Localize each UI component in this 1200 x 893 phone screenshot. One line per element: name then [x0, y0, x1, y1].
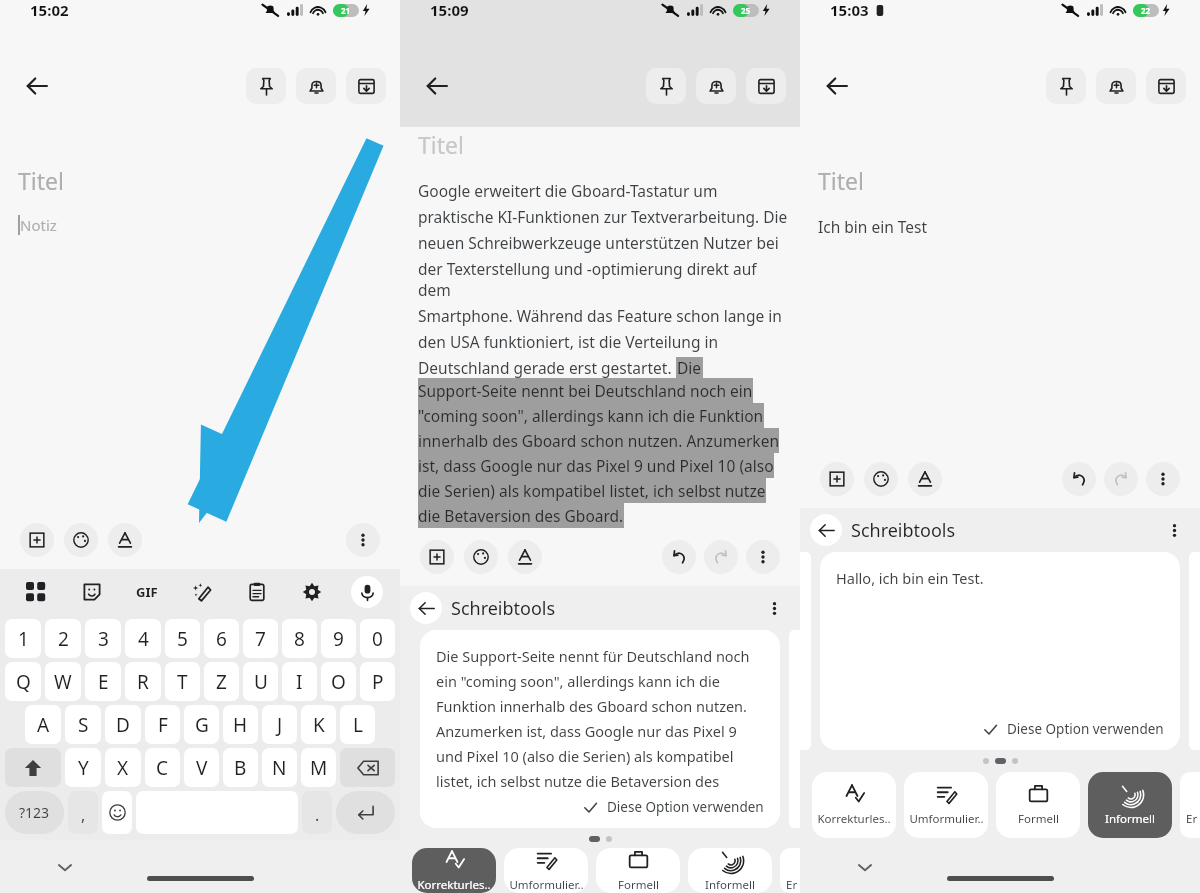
- button[interactable]: H: [223, 705, 258, 744]
- button[interactable]: Diese Option verwenden: [983, 720, 1164, 738]
- button[interactable]: Redo: [1104, 462, 1138, 496]
- button[interactable]: Back: [14, 63, 60, 109]
- button[interactable]: Back: [414, 63, 460, 109]
- button[interactable]: Clipboard: [229, 569, 284, 614]
- button[interactable]: Writing tools: [174, 569, 229, 614]
- staticText: 15:09: [430, 0, 469, 20]
- button[interactable]: Reminder: [1096, 68, 1136, 104]
- button[interactable]: Redo: [704, 540, 738, 574]
- button[interactable]: Hallo, ich bin ein Test.: [820, 552, 1180, 750]
- button[interactable]: Korrekturles..: [812, 772, 896, 838]
- button[interactable]: Palette: [464, 540, 498, 574]
- button[interactable]: Diese Option verwenden: [583, 798, 764, 816]
- button[interactable]: More options: [760, 594, 788, 622]
- button[interactable]: Add: [820, 462, 854, 496]
- button[interactable]: GIF: [119, 569, 174, 614]
- button[interactable]: Undo: [662, 540, 696, 574]
- button[interactable]: Umformulier..: [904, 772, 988, 838]
- button[interactable]: 4: [125, 619, 161, 658]
- button[interactable]: Back: [810, 514, 842, 546]
- button[interactable]: Archive: [1146, 68, 1186, 104]
- button[interactable]: Formell: [596, 848, 680, 893]
- button[interactable]: U: [243, 662, 278, 701]
- button[interactable]: ?123: [5, 791, 64, 834]
- button[interactable]: L: [340, 705, 375, 744]
- button[interactable]: V: [184, 748, 219, 787]
- button[interactable]: D: [105, 705, 141, 744]
- button[interactable]: Die Support-Seite nennt für Deutschland …: [420, 630, 780, 828]
- button[interactable]: S: [65, 705, 101, 744]
- button[interactable]: Undo: [1062, 462, 1096, 496]
- button[interactable]: 6: [204, 619, 239, 658]
- button[interactable]: Formell: [996, 772, 1080, 838]
- button[interactable]: Archive: [346, 68, 386, 104]
- button[interactable]: Voice input: [351, 576, 383, 608]
- button[interactable]: 0: [360, 619, 395, 658]
- button[interactable]: Y: [65, 748, 101, 787]
- button[interactable]: Enter: [336, 791, 395, 834]
- button[interactable]: N: [262, 748, 297, 787]
- button[interactable]: Format: [108, 523, 142, 557]
- button[interactable]: Archive: [746, 68, 786, 104]
- button[interactable]: Pin: [1046, 68, 1086, 104]
- button[interactable]: Format: [508, 540, 542, 574]
- button[interactable]: Add: [20, 523, 54, 557]
- button[interactable]: Back: [814, 63, 860, 109]
- button[interactable]: Reminder: [296, 68, 336, 104]
- button[interactable]: Format: [908, 462, 942, 496]
- button[interactable]: Umformulier..: [504, 848, 588, 893]
- button[interactable]: More options: [346, 523, 380, 557]
- button[interactable]: Z: [204, 662, 239, 701]
- button[interactable]: Q: [5, 662, 41, 701]
- button[interactable]: K: [301, 705, 336, 744]
- button[interactable]: Er: [1180, 772, 1200, 838]
- button[interactable]: Hide keyboard: [52, 854, 78, 880]
- button[interactable]: 8: [282, 619, 317, 658]
- button[interactable]: 3: [85, 619, 121, 658]
- button[interactable]: More options: [1146, 462, 1180, 496]
- button[interactable]: T: [165, 662, 200, 701]
- button[interactable]: Informell: [1088, 772, 1172, 838]
- button[interactable]: More options: [1160, 516, 1188, 544]
- button[interactable]: Shift: [5, 748, 61, 787]
- button[interactable]: I: [282, 662, 317, 701]
- button[interactable]: P: [360, 662, 395, 701]
- button[interactable]: Palette: [64, 523, 98, 557]
- button[interactable]: O: [321, 662, 356, 701]
- button[interactable]: X: [105, 748, 141, 787]
- button[interactable]: Settings: [284, 569, 339, 614]
- button[interactable]: W: [45, 662, 81, 701]
- button[interactable]: 7: [243, 619, 278, 658]
- button[interactable]: Pin: [246, 68, 286, 104]
- button[interactable]: A: [25, 705, 61, 744]
- button[interactable]: Korrekturles..: [412, 848, 496, 893]
- button[interactable]: Er: [780, 848, 800, 893]
- button[interactable]: Pin: [646, 68, 686, 104]
- button[interactable]: G: [184, 705, 219, 744]
- button[interactable]: Add: [420, 540, 454, 574]
- button[interactable]: .: [302, 791, 332, 834]
- button[interactable]: Palette: [864, 462, 898, 496]
- button[interactable]: 9: [321, 619, 356, 658]
- button[interactable]: C: [145, 748, 180, 787]
- button[interactable]: Reminder: [696, 68, 736, 104]
- button[interactable]: 1: [5, 619, 41, 658]
- button[interactable]: R: [125, 662, 161, 701]
- button[interactable]: Hide keyboard: [852, 854, 878, 880]
- button[interactable]: B: [223, 748, 258, 787]
- button[interactable]: F: [145, 705, 180, 744]
- button[interactable]: J: [262, 705, 297, 744]
- button[interactable]: Stickers: [64, 569, 119, 614]
- button[interactable]: Back: [410, 592, 442, 624]
- button[interactable]: 2: [45, 619, 81, 658]
- button[interactable]: ,: [68, 791, 98, 834]
- button[interactable]: E: [85, 662, 121, 701]
- button[interactable]: Informell: [688, 848, 772, 893]
- button[interactable]: M: [301, 748, 336, 787]
- button[interactable]: Emoji: [102, 791, 132, 834]
- button[interactable]: Apps: [8, 569, 64, 614]
- button[interactable]: More options: [746, 540, 780, 574]
- button[interactable]: 5: [165, 619, 200, 658]
- button[interactable]: Backspace: [340, 748, 395, 787]
